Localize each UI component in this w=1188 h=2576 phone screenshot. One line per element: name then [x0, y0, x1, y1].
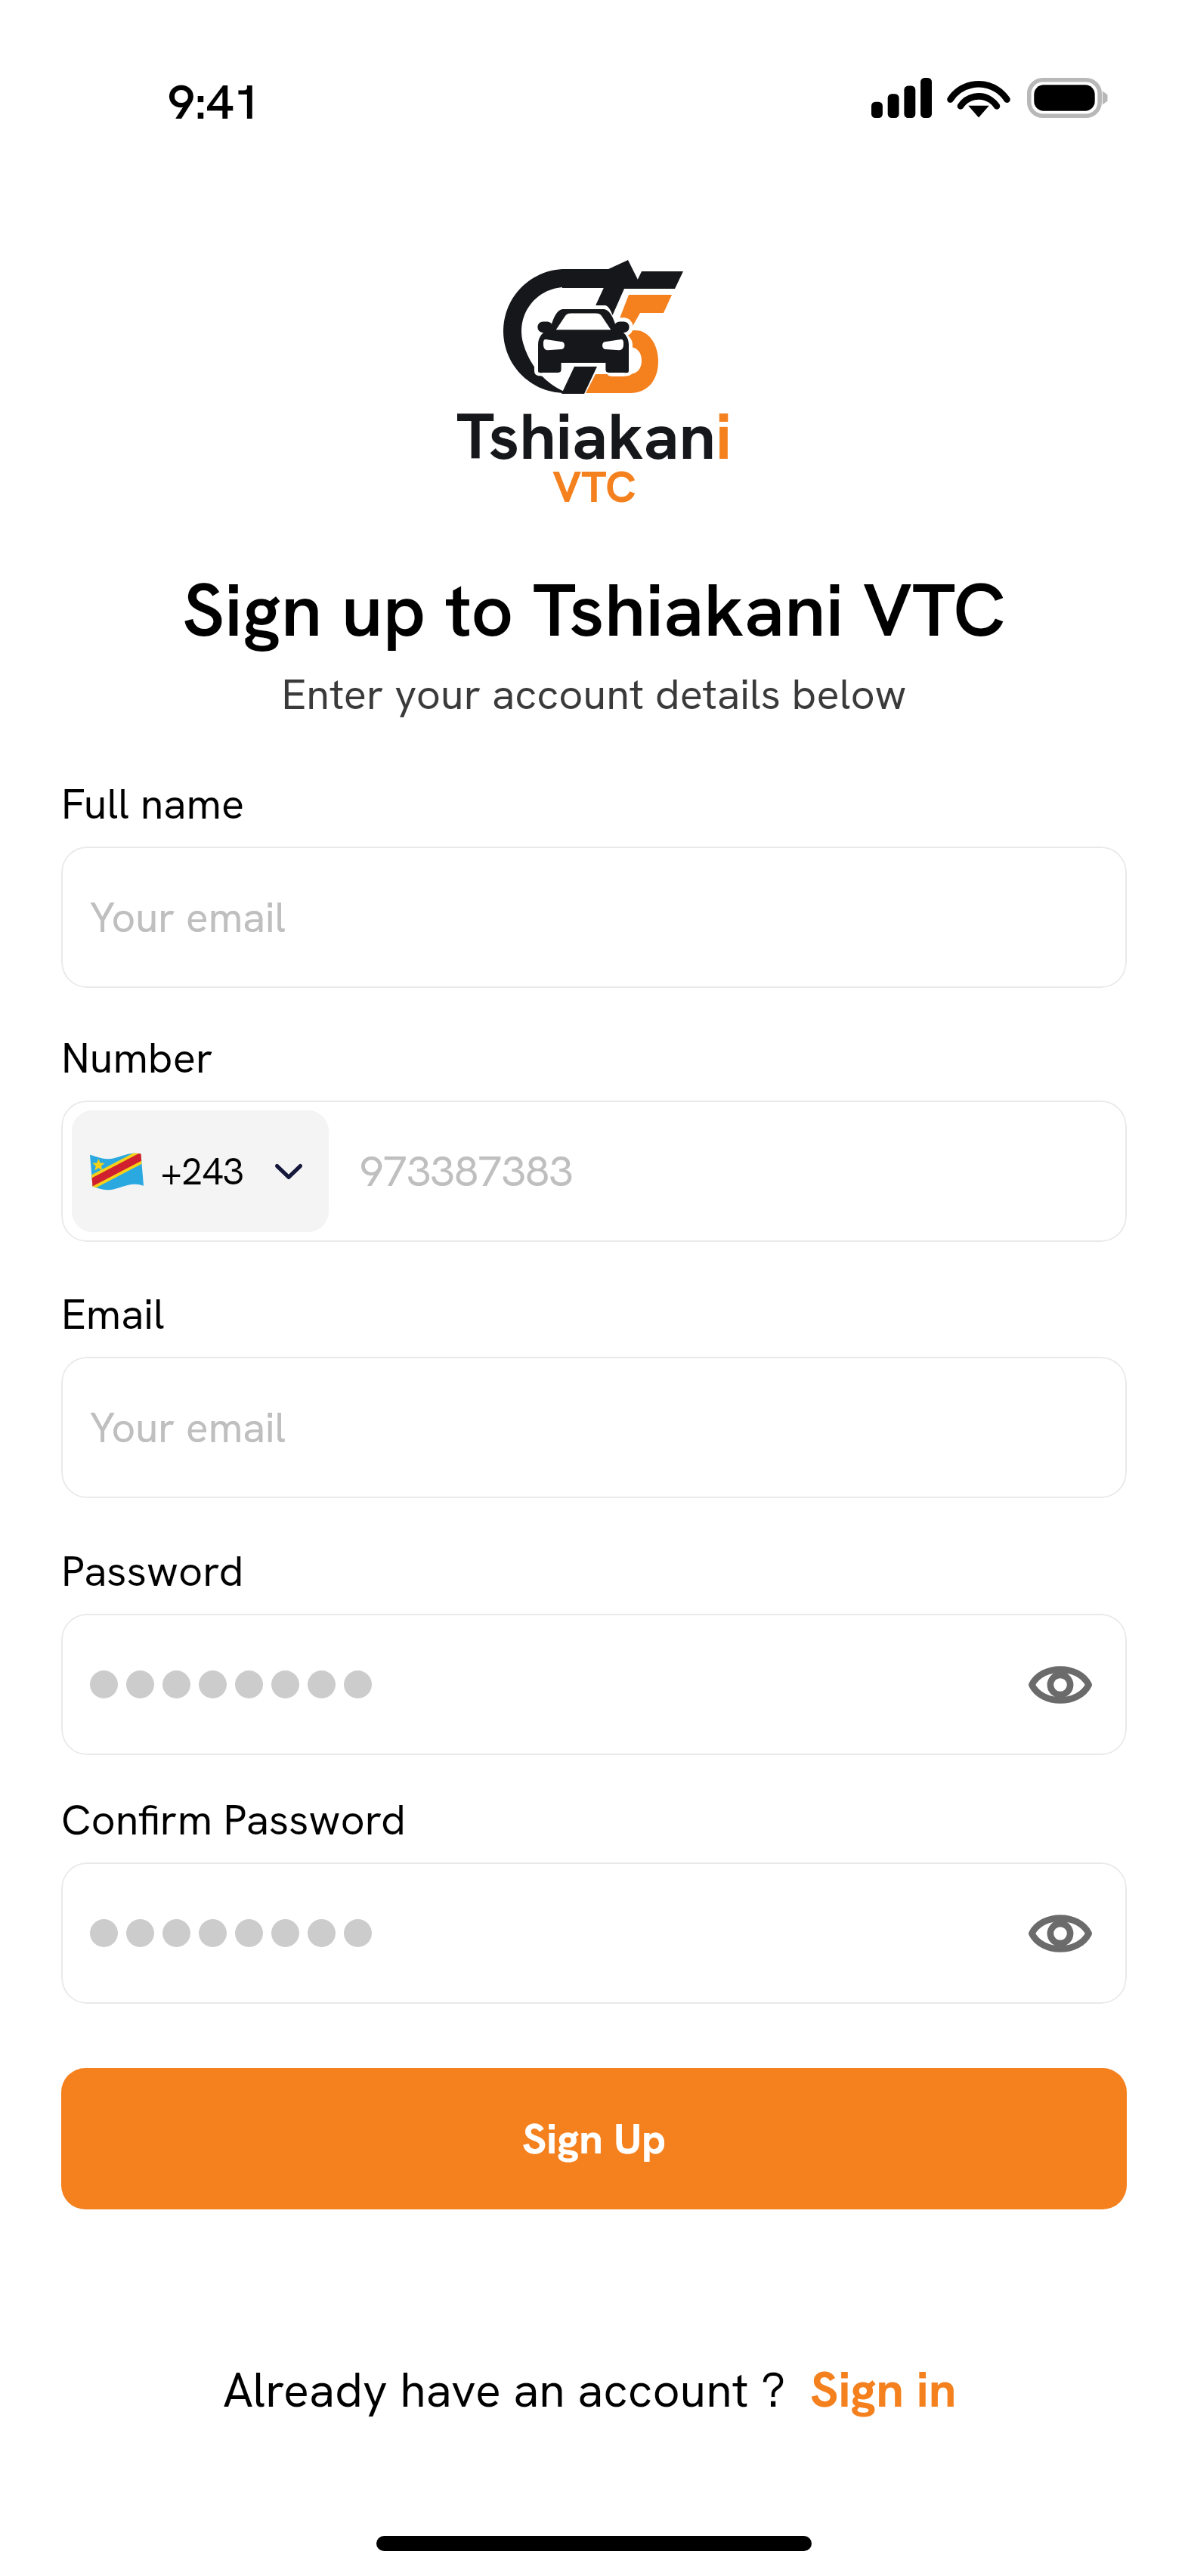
button[interactable]: Show password	[1022, 1647, 1098, 1723]
staticText: Tshiakan	[456, 394, 716, 478]
button[interactable]: Your email	[61, 847, 1127, 988]
staticText: Your email	[90, 890, 286, 945]
staticText: i	[716, 394, 732, 478]
staticText: Enter your account details below	[0, 667, 1188, 722]
staticText: 9:41	[168, 70, 261, 133]
staticText: +243	[161, 1147, 244, 1196]
button[interactable]: Show confirm password	[1022, 1896, 1098, 1971]
button[interactable]: Select country code	[72, 1110, 329, 1232]
button[interactable]: Your email	[61, 1357, 1127, 1498]
staticText: Email	[61, 1286, 165, 1342]
staticText: Full name	[61, 776, 245, 831]
button[interactable]: Show confirm password	[61, 1862, 1127, 2004]
staticText: Sign Up	[522, 2111, 667, 2166]
button[interactable]: Sign Up	[61, 2068, 1127, 2209]
staticText: Sign up to Tshiakani VTC	[0, 562, 1188, 658]
staticText: Password	[61, 1543, 244, 1599]
button[interactable]: Show password	[61, 1614, 1127, 1755]
staticText: 973387383	[360, 1144, 574, 1199]
staticText: Sign in	[810, 2358, 957, 2422]
button[interactable]: Sign in	[810, 2358, 957, 2422]
staticText: Already have an account ?	[223, 2359, 786, 2421]
staticText: VTC	[552, 459, 636, 515]
staticText: Confirm Password	[61, 1792, 406, 1847]
staticText: Your email	[90, 1401, 286, 1455]
staticText: Number	[61, 1030, 213, 1085]
